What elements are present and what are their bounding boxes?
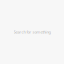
staticText: Search for something [13,29,50,35]
